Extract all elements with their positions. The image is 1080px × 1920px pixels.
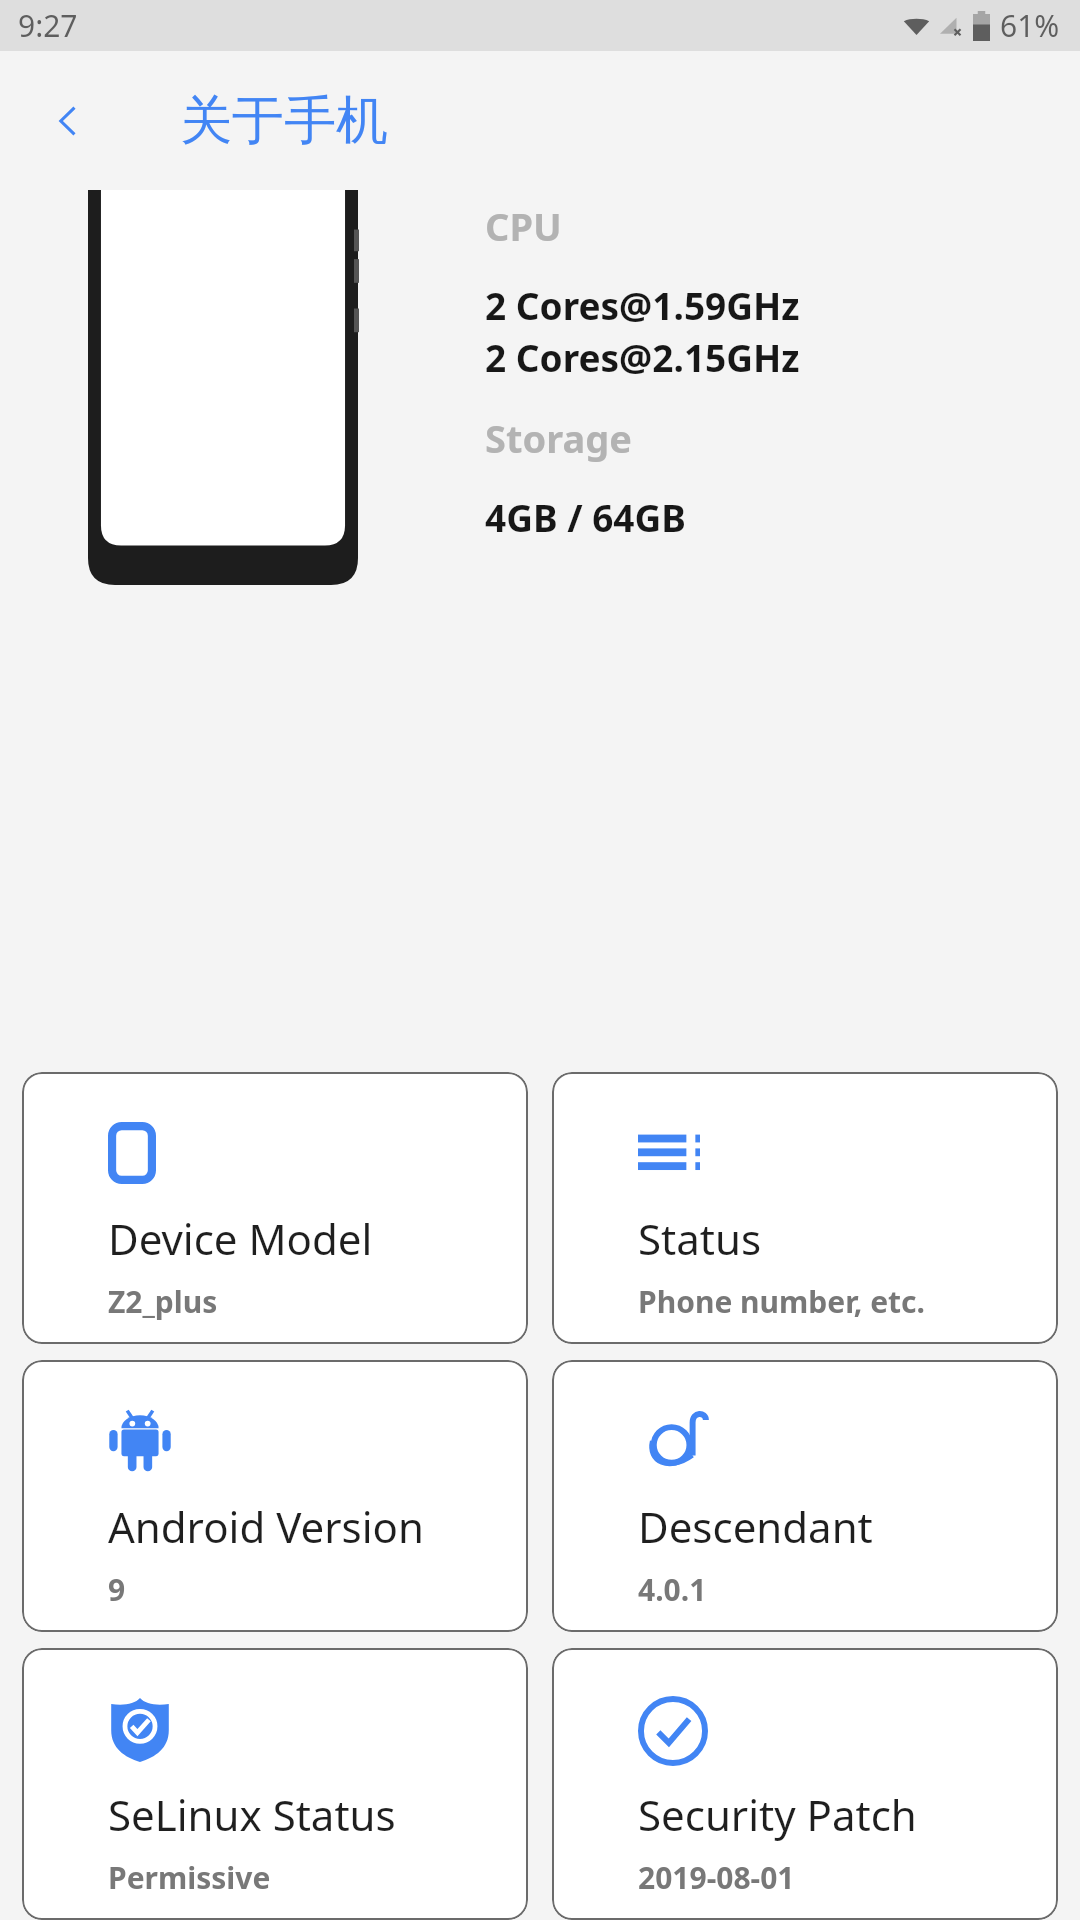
staticText: 4GB / 64GB [485,492,686,542]
staticText: Permissive [108,1857,271,1898]
button[interactable]: Security Patch [552,1648,1058,1920]
staticText: 2 Cores@1.59GHz [485,280,800,330]
staticText: 2 Cores@2.15GHz [485,332,800,382]
staticText: 9 [108,1569,126,1610]
staticText: Storage [485,412,632,464]
staticText: Android Version [108,1498,424,1555]
staticText: Descendant [638,1498,873,1555]
staticText: SeLinux Status [108,1786,396,1843]
staticText: 2019-08-01 [638,1857,795,1898]
button[interactable]: Android Version [22,1360,528,1632]
staticText: CPU [485,200,562,252]
staticText: Device Model [108,1210,373,1267]
button[interactable]: SeLinux Status [22,1648,528,1920]
staticText: Status [638,1210,762,1267]
staticText: Phone number, etc. [638,1281,926,1322]
staticText: Z2_plus [108,1281,218,1322]
staticText: 9:27 [18,5,78,46]
button[interactable]: Back [28,81,108,161]
button[interactable]: Device Model [22,1072,528,1344]
staticText: 关于手机 [180,88,388,154]
staticText: Security Patch [638,1786,917,1843]
staticText: 61% [1000,5,1060,46]
staticText: 4.0.1 [638,1569,707,1610]
button[interactable]: Descendant [552,1360,1058,1632]
button[interactable]: Status [552,1072,1058,1344]
